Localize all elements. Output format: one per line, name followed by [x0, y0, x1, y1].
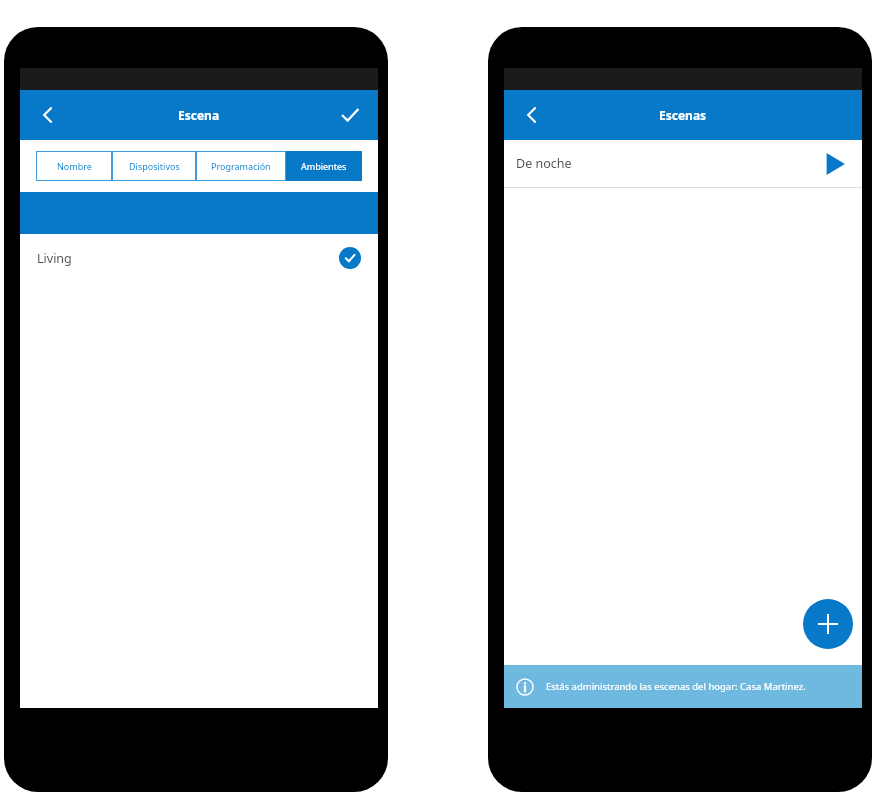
button[interactable]: Ambientes	[286, 151, 362, 181]
button[interactable]: Programación	[196, 151, 286, 181]
button[interactable]: Nombre	[36, 151, 112, 181]
button[interactable]: Dispositivos	[112, 151, 196, 181]
button[interactable]: Living	[20, 234, 378, 282]
staticText: Nombre	[57, 160, 92, 172]
staticText: Escenas	[659, 107, 707, 123]
button[interactable]: Back	[510, 90, 554, 140]
other: Selected	[339, 247, 361, 269]
staticText: Dispositivos	[129, 160, 180, 172]
button[interactable]: Add scene	[803, 599, 853, 649]
button[interactable]: Confirm	[328, 90, 372, 140]
button[interactable]: Back	[26, 90, 70, 140]
staticText: Estás administrando las escenas del hoga…	[546, 680, 806, 693]
staticText: De noche	[516, 155, 572, 172]
button[interactable]: De noche	[504, 140, 862, 187]
staticText: Escena	[178, 107, 220, 123]
staticText: Ambientes	[301, 160, 347, 172]
staticText: Programación	[211, 160, 271, 172]
staticText: Living	[37, 250, 72, 267]
button[interactable]: Play scene	[820, 149, 850, 179]
